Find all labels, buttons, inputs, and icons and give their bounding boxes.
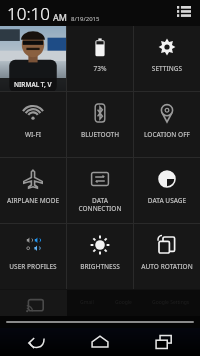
button[interactable]: Cast screen	[0, 290, 67, 316]
staticText: DATA USAGE	[136, 196, 198, 205]
button[interactable]: Bluetooth	[67, 92, 133, 157]
button[interactable]: Notifications list	[175, 4, 193, 22]
button[interactable]: Auto rotation	[134, 224, 200, 289]
staticText: AUTO ROTATION	[136, 262, 198, 271]
button[interactable]: Data usage	[134, 158, 200, 223]
button[interactable]: Home	[78, 328, 122, 356]
staticText: DATA CONNECTION	[69, 196, 131, 213]
button[interactable]: Data connection	[67, 158, 133, 223]
button[interactable]: Airplane mode	[0, 158, 66, 223]
button[interactable]: Location off	[134, 92, 200, 157]
button[interactable]: Brightness	[67, 224, 133, 289]
staticText: BRIGHTNESS	[69, 262, 131, 271]
staticText: AIRPLANE MODE	[2, 196, 64, 205]
staticText: SETTINGS	[136, 64, 198, 73]
staticText: LOCATION OFF	[136, 130, 198, 139]
button[interactable]: Battery	[67, 26, 133, 91]
staticText: BLUETOOTH	[69, 130, 131, 139]
button[interactable]: Settings	[134, 26, 200, 91]
button[interactable]: User profile Nirmal T, V	[0, 26, 66, 91]
button[interactable]: User profiles	[0, 224, 66, 289]
staticText: 73%	[69, 64, 131, 73]
staticText: AM	[53, 11, 67, 23]
button[interactable]: Recents	[142, 328, 186, 356]
staticText: Gmail	[80, 299, 94, 306]
staticText: Google Settings	[152, 299, 190, 306]
staticText: WI-FI	[2, 130, 64, 139]
staticText: Google	[115, 299, 132, 306]
button[interactable]: Back	[14, 328, 58, 356]
button[interactable]: Wi-Fi	[0, 92, 66, 157]
staticText: USER PROFILES	[2, 262, 64, 271]
staticText: 8/19/2015	[71, 15, 100, 23]
staticText: 10:10	[7, 2, 50, 25]
staticText: NIRMAL T, V	[14, 80, 52, 89]
